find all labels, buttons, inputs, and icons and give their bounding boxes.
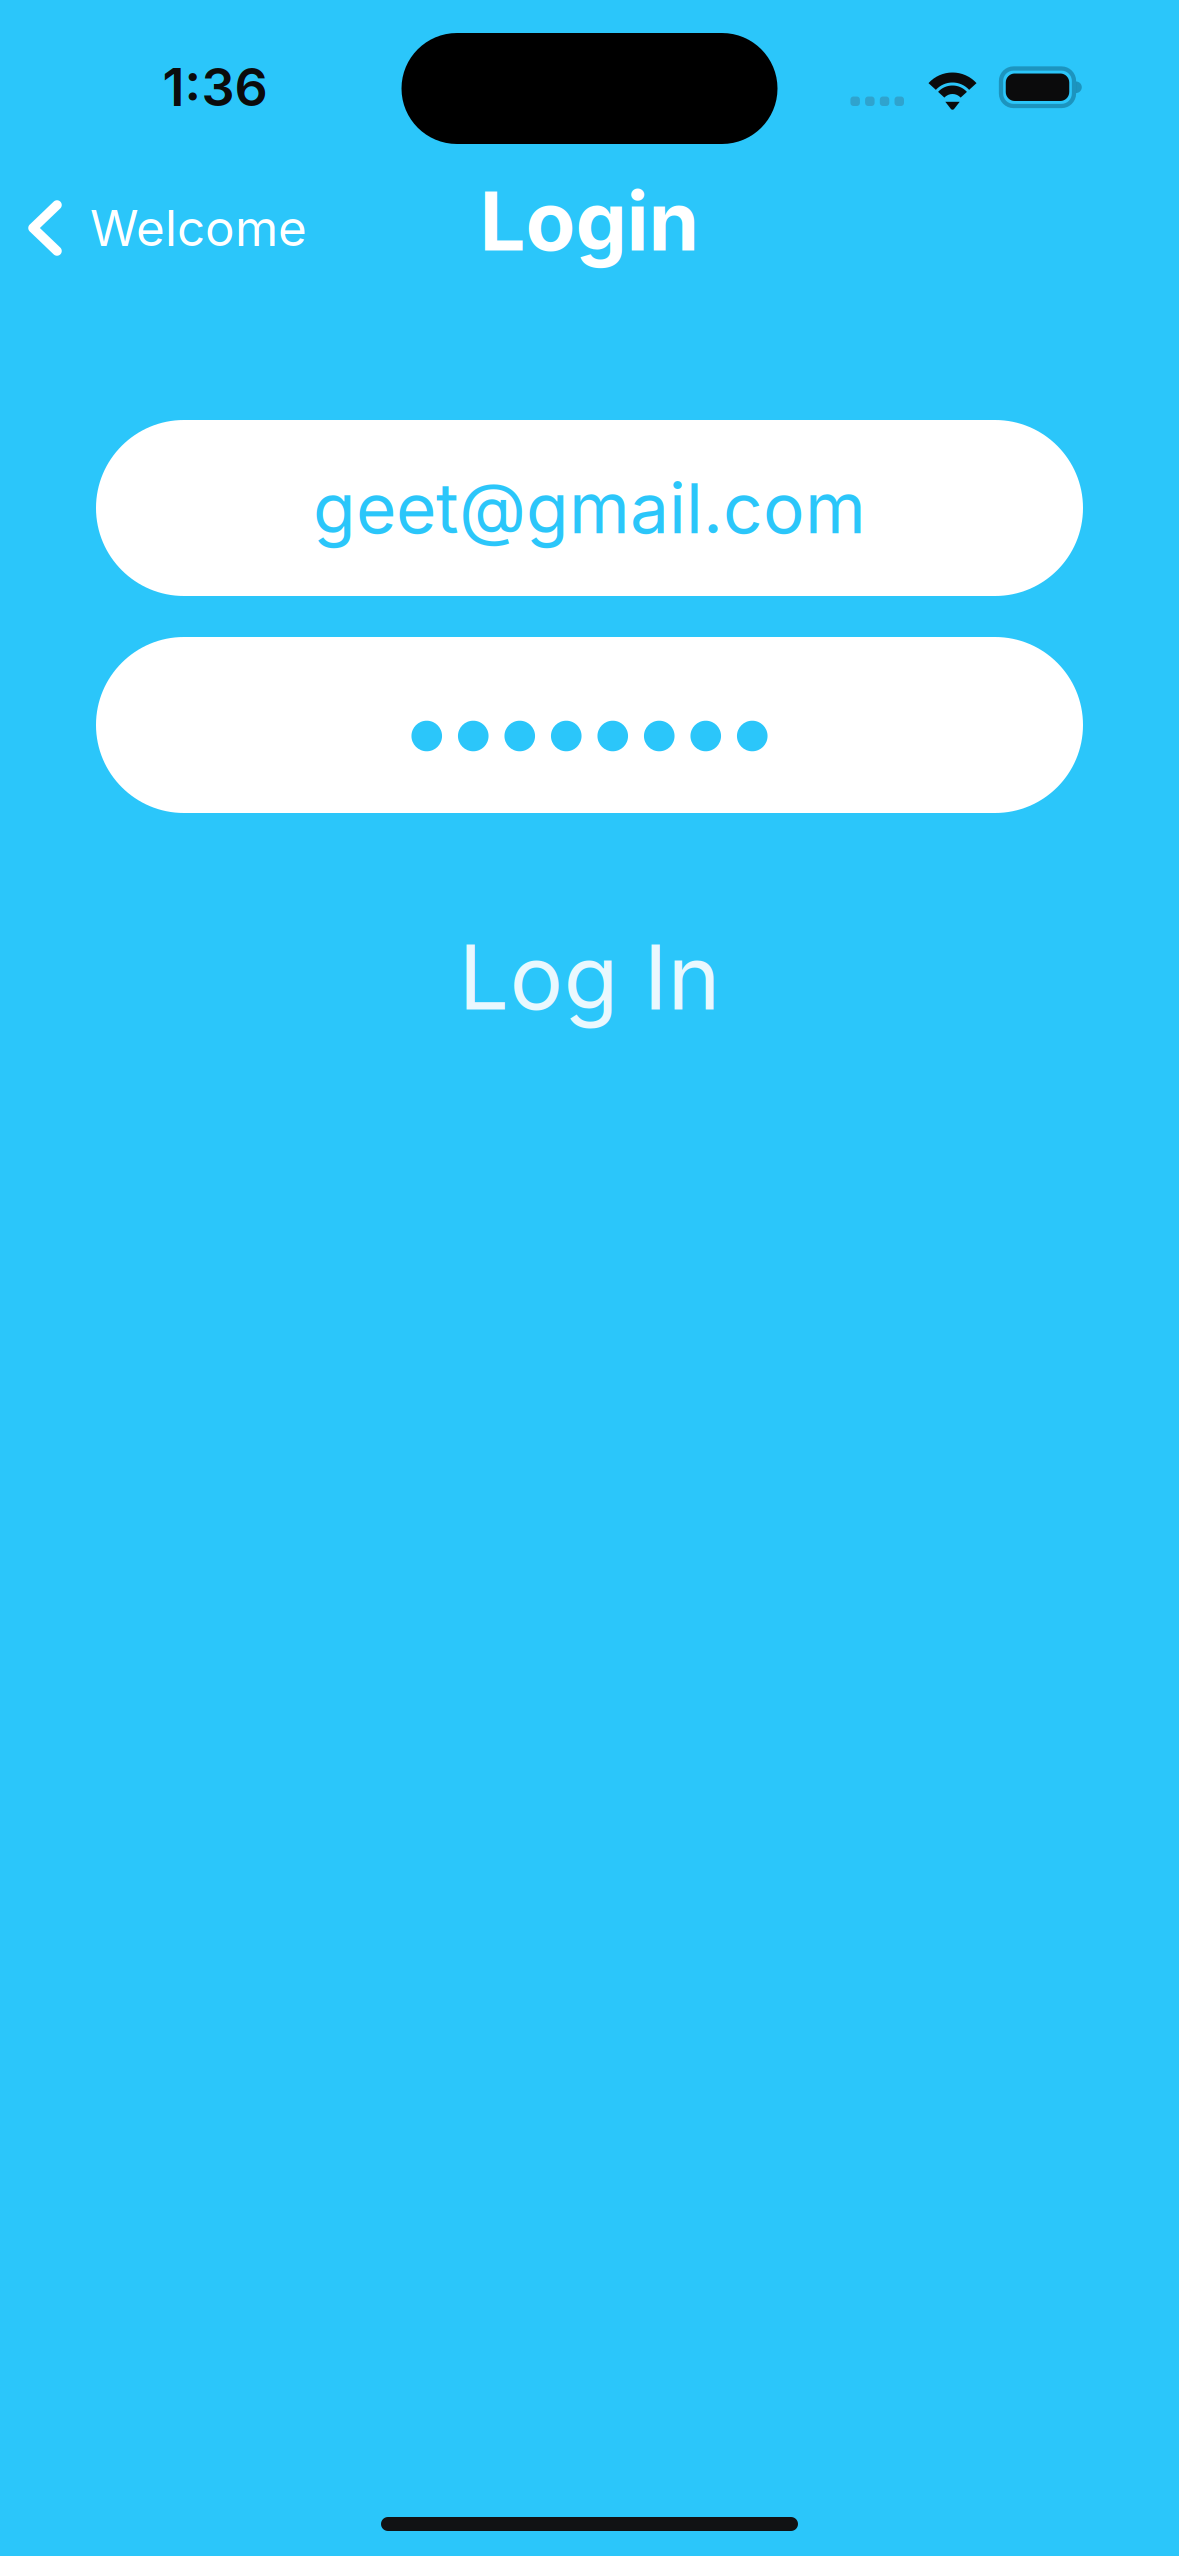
button[interactable]: Log In <box>96 921 1083 1029</box>
button[interactable]: Password <box>96 637 1083 813</box>
staticText: Login <box>479 172 699 270</box>
button[interactable]: geet@gmail.com <box>96 420 1083 596</box>
staticText: geet@gmail.com <box>313 466 866 550</box>
staticText: Log In <box>458 923 720 1031</box>
staticText: Welcome <box>90 198 307 258</box>
staticText: 1:36 <box>162 55 267 118</box>
button[interactable]: Welcome <box>0 178 307 278</box>
